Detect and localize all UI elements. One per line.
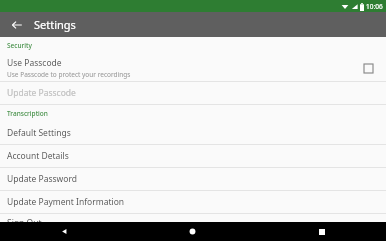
staticText: Sign Out bbox=[7, 217, 42, 222]
staticText: Security bbox=[7, 41, 32, 50]
staticText: Account Details bbox=[7, 150, 69, 162]
staticText: Update Password bbox=[7, 173, 77, 185]
button[interactable]: Update Payment Information bbox=[0, 191, 386, 213]
button[interactable]: Use Passcode checkbox bbox=[358, 58, 378, 78]
staticText: Settings bbox=[34, 17, 76, 32]
button[interactable]: Sign Out bbox=[0, 214, 386, 222]
button[interactable]: Back bbox=[0, 222, 128, 241]
staticText: Default Settings bbox=[7, 127, 71, 139]
staticText: Update Payment Information bbox=[7, 196, 125, 208]
button[interactable]: Recent apps bbox=[257, 222, 386, 241]
staticText: Use Passcode bbox=[7, 57, 62, 69]
staticText: 10:06 bbox=[366, 2, 383, 11]
staticText: Use Passcode to protect your recordings bbox=[7, 70, 131, 79]
button[interactable]: Update Password bbox=[0, 168, 386, 190]
staticText: Transcription bbox=[7, 109, 48, 118]
button[interactable]: Back bbox=[6, 14, 28, 36]
staticText: Update Passcode bbox=[7, 87, 76, 99]
button[interactable]: Default Settings bbox=[0, 122, 386, 144]
button[interactable]: Use Passcode bbox=[0, 54, 386, 81]
button[interactable]: Home bbox=[128, 222, 257, 241]
button[interactable]: Account Details bbox=[0, 145, 386, 167]
button[interactable]: Update Passcode bbox=[0, 82, 386, 104]
